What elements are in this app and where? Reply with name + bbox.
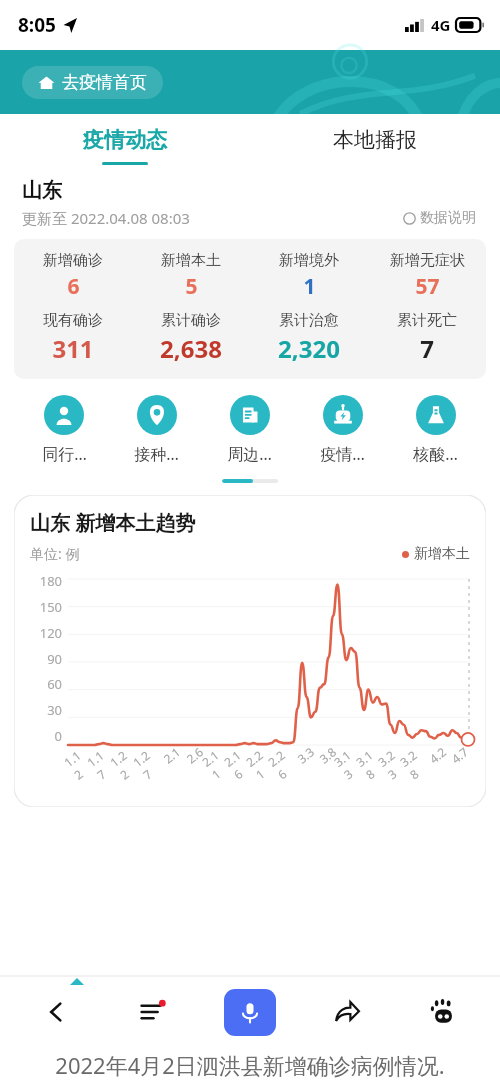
- button[interactable]: 累计确诊: [132, 311, 250, 365]
- button[interactable]: 新增确诊: [14, 251, 132, 301]
- staticText: 山东: [22, 178, 62, 203]
- staticText: 6: [67, 272, 80, 301]
- button[interactable]: 本地播报: [250, 114, 500, 178]
- button[interactable]: Voice search: [201, 976, 298, 1048]
- button[interactable]: 新增本土: [132, 251, 250, 301]
- staticText: 新增本土: [414, 545, 470, 563]
- staticText: 60: [47, 675, 62, 693]
- staticText: 3.8: [316, 743, 339, 767]
- staticText: 3.18: [352, 744, 389, 782]
- staticText: 新增境外: [279, 251, 339, 270]
- staticText: 疫情动态: [83, 127, 167, 153]
- staticText: 数据说明: [420, 209, 476, 227]
- staticText: 4.7: [448, 743, 471, 767]
- staticText: 2.26: [264, 744, 301, 782]
- staticText: 8:05: [18, 12, 56, 38]
- staticText: 本地播报: [333, 127, 417, 153]
- button[interactable]: Menu: [104, 976, 201, 1048]
- button[interactable]: 同行…: [18, 395, 110, 465]
- staticText: 57: [415, 272, 440, 301]
- staticText: 2.1: [160, 743, 183, 767]
- button[interactable]: 接种…: [110, 395, 203, 465]
- button[interactable]: 累计治愈: [250, 311, 368, 365]
- staticText: 累计确诊: [161, 311, 221, 330]
- button[interactable]: 周边…: [203, 395, 296, 465]
- staticText: 山东 新增本土趋势: [30, 509, 196, 536]
- staticText: 30: [47, 701, 62, 719]
- staticText: 1.22: [107, 743, 144, 783]
- staticText: 更新至 2022.04.08 08:03: [22, 208, 190, 228]
- staticText: 7: [420, 332, 434, 365]
- staticText: 5: [185, 272, 198, 301]
- staticText: 3.13: [330, 744, 367, 782]
- button[interactable]: 现有确诊: [14, 311, 132, 365]
- button[interactable]: 累计死亡: [368, 311, 486, 365]
- staticText: 2,320: [278, 332, 340, 365]
- button[interactable]: 疫情动态: [0, 114, 250, 178]
- staticText: 累计死亡: [397, 311, 457, 330]
- staticText: 同行…: [42, 443, 87, 465]
- staticText: 150: [39, 598, 62, 616]
- staticText: 周边…: [227, 443, 272, 465]
- staticText: 现有确诊: [43, 311, 103, 330]
- button[interactable]: Back: [8, 976, 104, 1048]
- staticText: 核酸…: [413, 443, 458, 465]
- staticText: 新增本土: [161, 251, 221, 270]
- button[interactable]: 新增无症状: [368, 251, 486, 301]
- staticText: 311: [52, 332, 94, 365]
- staticText: 2022年4月2日泗洪县新增确诊病例情况.: [55, 1050, 445, 1080]
- staticText: 120: [39, 624, 62, 642]
- staticText: 2.11: [198, 744, 235, 782]
- staticText: 4G: [431, 15, 451, 35]
- staticText: 1.17: [84, 743, 121, 783]
- staticText: 1.12: [61, 743, 98, 783]
- staticText: 去疫情首页: [62, 72, 147, 93]
- staticText: 0: [54, 727, 62, 745]
- staticText: 接种…: [134, 443, 179, 465]
- staticText: 3.3: [294, 743, 317, 767]
- staticText: 180: [39, 572, 62, 590]
- staticText: 2.16: [220, 744, 257, 782]
- button[interactable]: Baidu home: [395, 976, 492, 1048]
- staticText: 1.27: [130, 743, 167, 783]
- staticText: 2,638: [160, 332, 222, 365]
- staticText: 90: [47, 650, 62, 668]
- staticText: 疫情…: [320, 443, 365, 465]
- staticText: 新增确诊: [43, 251, 103, 270]
- staticText: 2.21: [242, 744, 279, 782]
- staticText: 单位: 例: [30, 544, 80, 563]
- staticText: 2.6: [183, 743, 206, 767]
- button[interactable]: 新增境外: [250, 251, 368, 301]
- staticText: 1: [303, 272, 316, 301]
- button[interactable]: Share: [298, 976, 395, 1048]
- staticText: 4.2: [426, 743, 449, 767]
- button[interactable]: 核酸…: [389, 395, 482, 465]
- staticText: 累计治愈: [279, 311, 339, 330]
- button[interactable]: 去疫情首页: [22, 66, 163, 99]
- button[interactable]: 疫情…: [296, 395, 389, 465]
- staticText: 3.28: [396, 744, 433, 782]
- button[interactable]: 数据说明: [401, 207, 478, 229]
- staticText: 新增无症状: [390, 251, 465, 270]
- staticText: 3.23: [374, 744, 411, 782]
